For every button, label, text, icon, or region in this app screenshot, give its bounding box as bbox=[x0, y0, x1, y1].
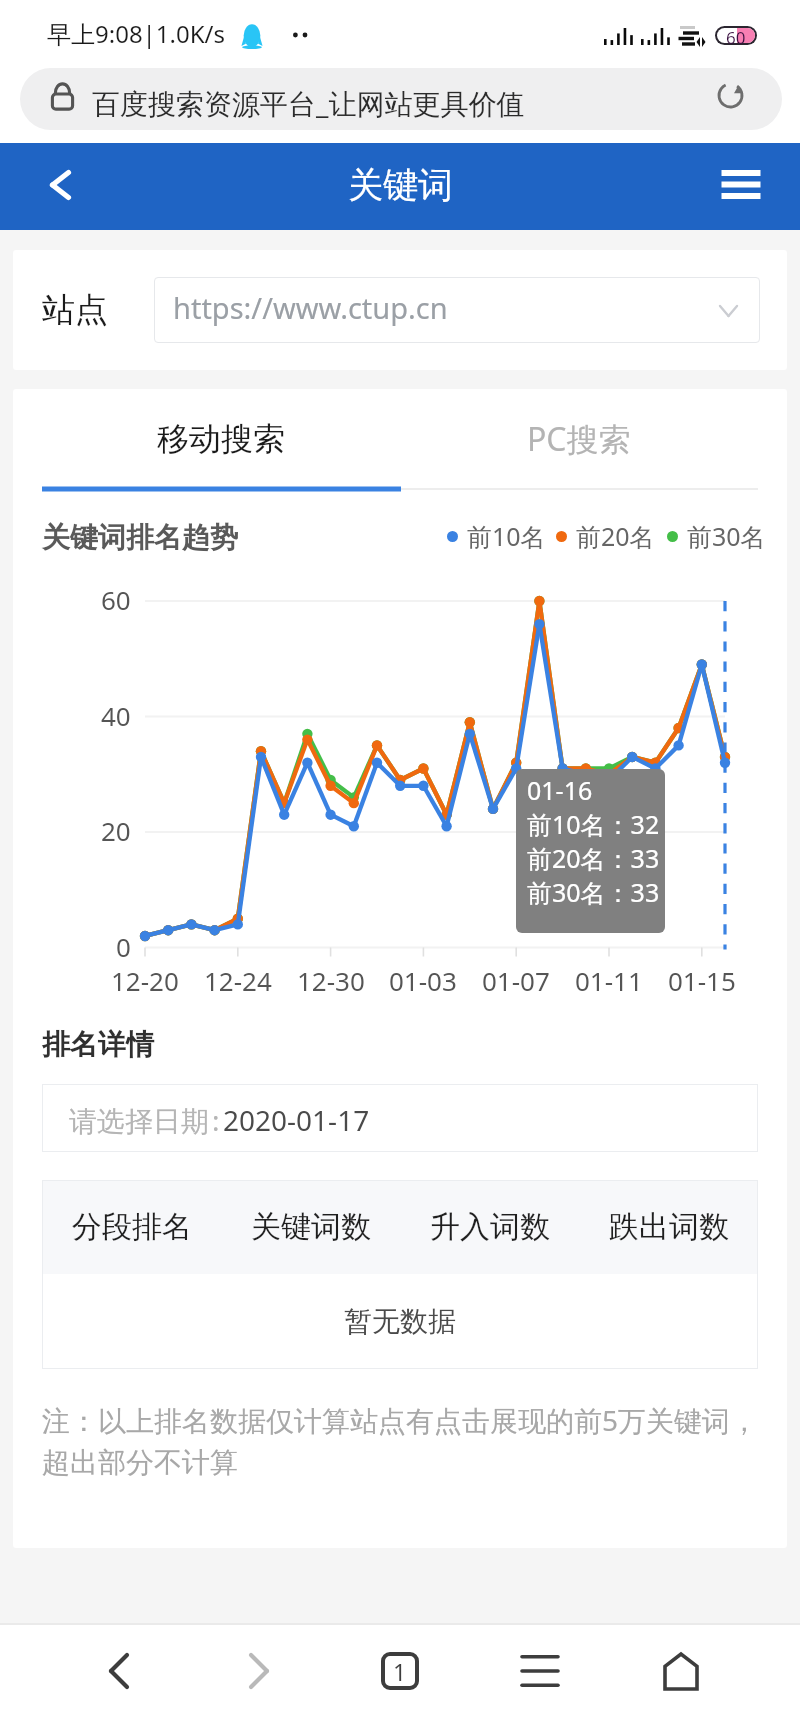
staticText: 前10名 bbox=[467, 519, 546, 553]
staticText: 移动搜索 bbox=[157, 419, 285, 459]
staticText: 暂无数据 bbox=[344, 1304, 456, 1339]
button[interactable]: 移动搜索 bbox=[42, 389, 400, 489]
staticText: https://www.ctup.cn bbox=[173, 288, 448, 327]
staticText: PC搜索 bbox=[527, 417, 631, 461]
staticText: 前30名 bbox=[687, 519, 766, 553]
button[interactable]: 请选择日期 bbox=[42, 1084, 758, 1152]
button[interactable]: Back bbox=[69, 1625, 169, 1717]
staticText: 12-20 bbox=[111, 963, 179, 998]
staticText: 前20名：33 bbox=[527, 841, 660, 875]
staticText: 01-15 bbox=[668, 963, 736, 998]
staticText: 关键词数 bbox=[251, 1208, 371, 1246]
staticText: 40 bbox=[101, 698, 131, 733]
staticText: 分段排名 bbox=[72, 1208, 192, 1246]
staticText: 前10名：32 bbox=[527, 807, 660, 841]
staticText: 1 bbox=[393, 1656, 407, 1687]
staticText: 12-24 bbox=[204, 963, 272, 998]
staticText: 01-07 bbox=[482, 963, 550, 998]
button[interactable]: Home bbox=[631, 1625, 731, 1717]
staticText: 排名详情 bbox=[42, 1027, 154, 1062]
staticText: 关键词 bbox=[348, 163, 453, 207]
staticText: 20 bbox=[101, 813, 131, 848]
staticText: 跌出词数 bbox=[609, 1208, 729, 1246]
button[interactable]: Menu bbox=[490, 1625, 590, 1717]
staticText: 01-03 bbox=[389, 963, 457, 998]
staticText: 关键词排名趋势 bbox=[42, 520, 238, 555]
staticText: 12-30 bbox=[297, 963, 365, 998]
button[interactable]: Menu bbox=[724, 170, 758, 199]
staticText: 60 bbox=[101, 582, 131, 617]
button[interactable]: Forward bbox=[209, 1625, 309, 1717]
button[interactable]: Back bbox=[10, 143, 110, 230]
staticText: 0 bbox=[116, 929, 131, 964]
staticText: 前30名：33 bbox=[527, 875, 660, 909]
staticText: 请选择日期 bbox=[69, 1104, 209, 1139]
staticText: 注：以上排名数据仅计算站点有点击展现的前5万关键词，超出部分不计算 bbox=[42, 1401, 764, 1480]
staticText: 01-16 bbox=[527, 773, 593, 807]
button[interactable]: PC搜索 bbox=[400, 389, 758, 489]
button[interactable]: https://www.ctup.cn bbox=[154, 277, 760, 343]
staticText: 百度搜索资源平台_让网站更具价值 bbox=[92, 84, 525, 122]
staticText: 站点 bbox=[42, 289, 108, 331]
staticText: 早上9:08|1.0K/s bbox=[47, 17, 226, 50]
staticText: 前20名 bbox=[576, 519, 655, 553]
staticText: 升入词数 bbox=[430, 1208, 550, 1246]
staticText: 01-11 bbox=[575, 963, 643, 998]
staticText: 60 bbox=[726, 26, 746, 45]
staticText: : bbox=[212, 1101, 220, 1139]
staticText: 2020-01-17 bbox=[223, 1101, 370, 1139]
button[interactable]: 百度搜索资源平台_让网站更具价值 bbox=[20, 68, 782, 130]
button[interactable]: Tabs bbox=[350, 1625, 450, 1717]
